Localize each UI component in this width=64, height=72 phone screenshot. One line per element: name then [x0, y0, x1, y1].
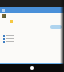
- button[interactable]: Home: [30, 66, 34, 70]
- button[interactable]: Menu: [0, 7, 6, 13]
- button[interactable]: [0, 37, 64, 40]
- button[interactable]: [0, 34, 64, 37]
- button[interactable]: [0, 40, 64, 43]
- button[interactable]: [50, 25, 62, 29]
